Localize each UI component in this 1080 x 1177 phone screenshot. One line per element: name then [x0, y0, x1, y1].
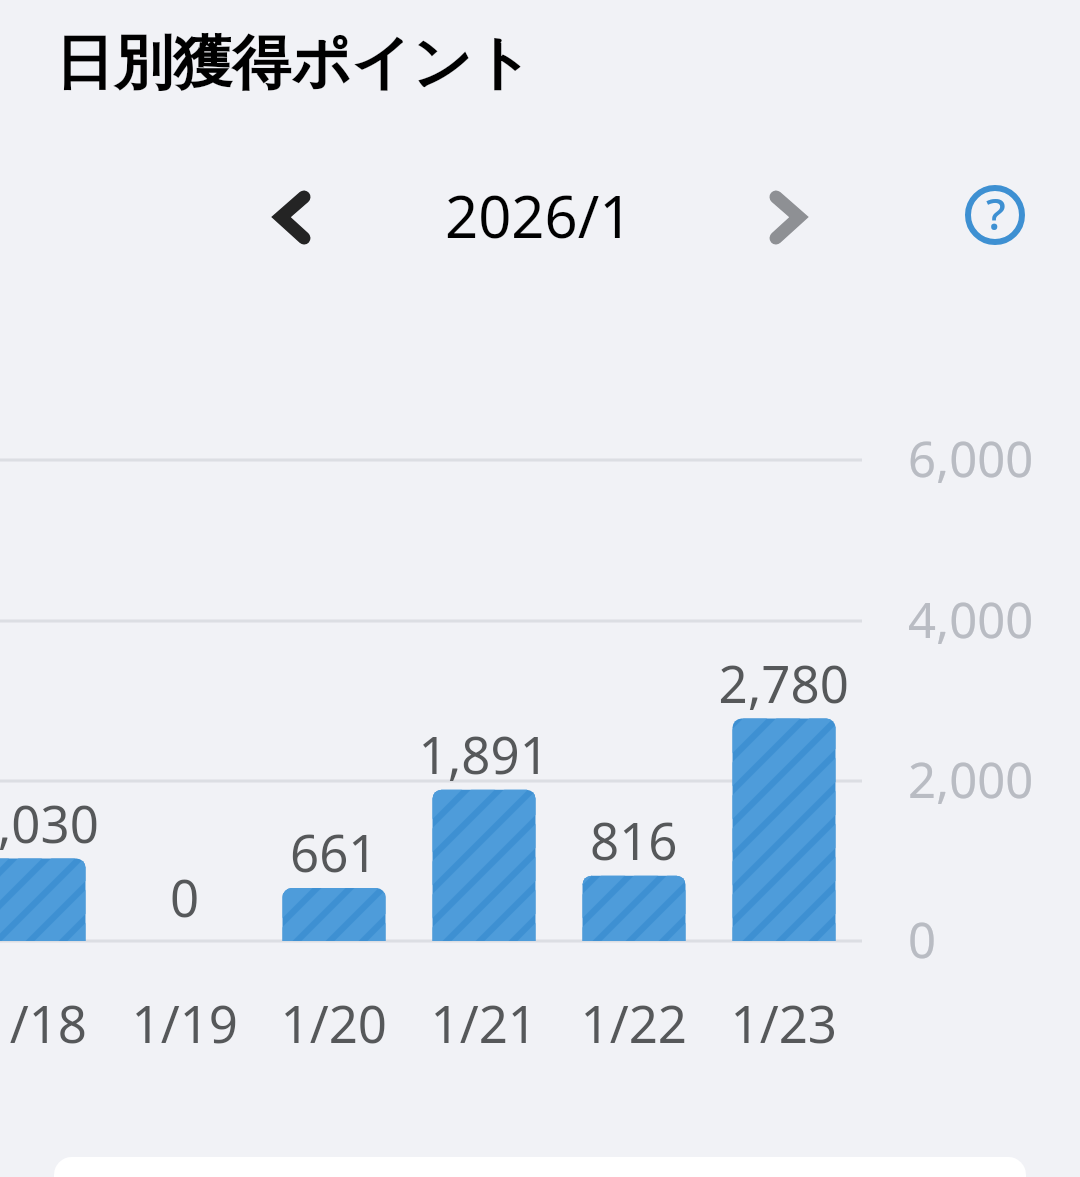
button[interactable]: Next month	[740, 170, 835, 265]
button[interactable]: Previous month	[255, 170, 350, 265]
button[interactable]: Help	[948, 168, 1043, 263]
